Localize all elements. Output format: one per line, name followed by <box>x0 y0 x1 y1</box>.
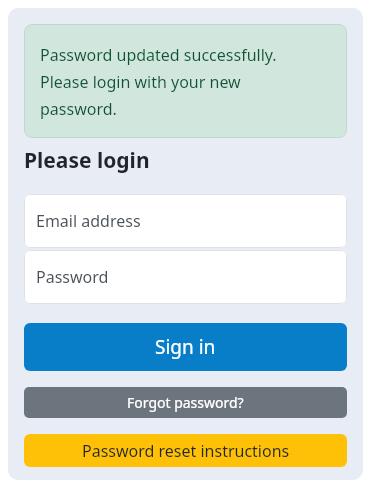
staticText: Password <box>36 266 109 288</box>
button[interactable]: Sign in <box>24 323 347 371</box>
staticText: Forgot password? <box>127 393 244 412</box>
staticText: Sign in <box>155 334 216 360</box>
staticText: Please login <box>24 146 150 175</box>
staticText: Password updated successfully. Please lo… <box>40 44 277 120</box>
button[interactable]: Forgot password? <box>24 387 347 418</box>
button[interactable]: Password <box>24 250 347 304</box>
staticText: Password reset instructions <box>82 440 290 462</box>
staticText: Email address <box>36 210 141 232</box>
button[interactable]: Email address <box>24 194 347 248</box>
button[interactable]: Password reset instructions <box>24 434 347 467</box>
